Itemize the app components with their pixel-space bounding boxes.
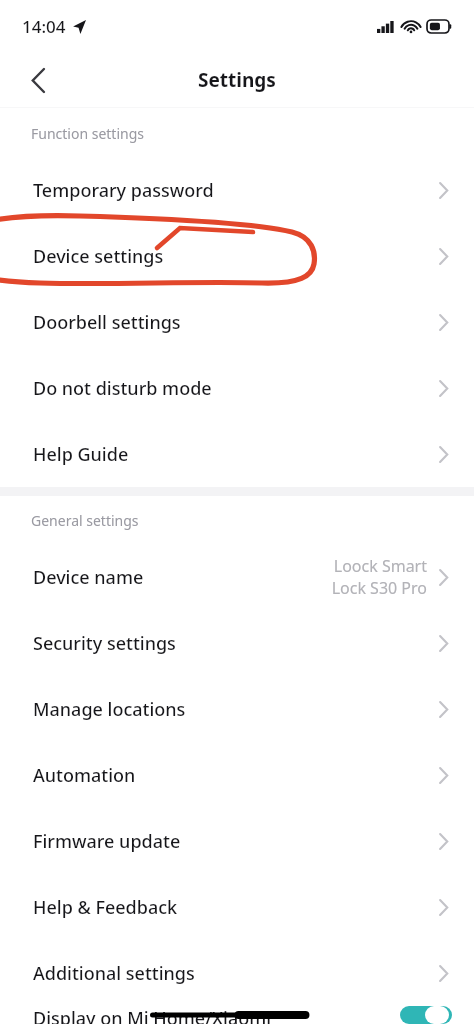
staticText: Do not disturb mode	[33, 376, 212, 401]
staticText: Loock Smart Lock S30 Pro	[331, 555, 427, 599]
staticText: Device settings	[33, 244, 164, 269]
staticText: Settings	[198, 67, 276, 93]
button[interactable]: Help Guide	[0, 421, 474, 487]
staticText: Help & Feedback	[33, 895, 178, 920]
button[interactable]: Display on Mi Home/Xiaomi	[0, 1006, 474, 1024]
button[interactable]: Help & Feedback	[0, 874, 474, 940]
staticText: Device name	[33, 565, 144, 590]
button[interactable]: Additional settings	[0, 940, 474, 1006]
button[interactable]: Back	[14, 56, 62, 104]
button[interactable]: Manage locations	[0, 676, 474, 742]
staticText: Automation	[33, 763, 136, 788]
staticText: Firmware update	[33, 829, 181, 854]
button[interactable]: Doorbell settings	[0, 289, 474, 355]
button[interactable]: Device settings	[0, 223, 474, 289]
staticText: Function settings	[31, 124, 145, 143]
staticText: Help Guide	[33, 442, 129, 467]
staticText: Additional settings	[33, 961, 195, 986]
staticText: Doorbell settings	[33, 310, 181, 335]
staticText: Manage locations	[33, 697, 186, 722]
button[interactable]: Device name	[0, 544, 474, 610]
staticText: General settings	[31, 511, 139, 530]
staticText: 14:04	[22, 15, 66, 38]
staticText: Display on Mi Home/Xiaomi	[33, 1006, 272, 1024]
staticText: Security settings	[33, 631, 176, 656]
button[interactable]: Display on Mi Home toggle	[400, 1006, 452, 1024]
button[interactable]: Firmware update	[0, 808, 474, 874]
staticText: Temporary password	[33, 178, 214, 203]
button[interactable]: Do not disturb mode	[0, 355, 474, 421]
button[interactable]: Temporary password	[0, 157, 474, 223]
button[interactable]: Security settings	[0, 610, 474, 676]
button[interactable]: Automation	[0, 742, 474, 808]
